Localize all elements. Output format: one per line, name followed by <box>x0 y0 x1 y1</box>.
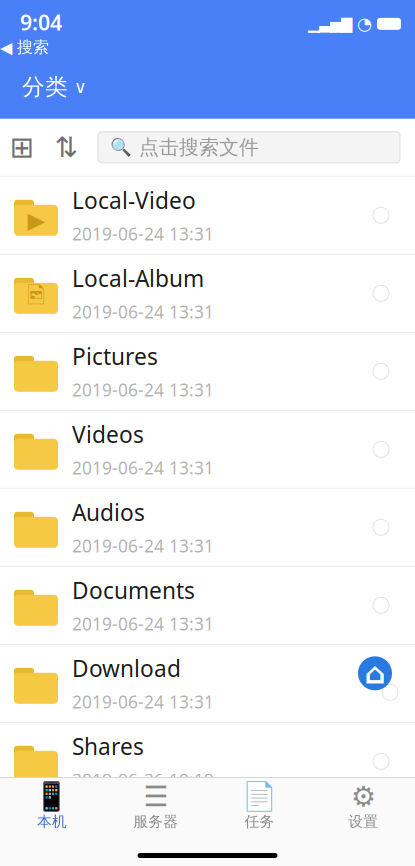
staticText: 设置 <box>348 812 378 830</box>
staticText: Local-Video <box>72 185 196 215</box>
staticText: 📄 <box>242 780 277 812</box>
staticText: 2019-06-24 13:31 <box>72 378 214 401</box>
button[interactable]: Audios <box>0 489 415 567</box>
staticText: ⊞ <box>9 131 34 164</box>
staticText: 2019-06-24 13:31 <box>72 222 214 245</box>
staticText: ▁▃▅▇ <box>308 15 352 32</box>
staticText: 服务器 <box>133 812 178 830</box>
staticText: ⌂ <box>364 657 385 690</box>
staticText: 🖻 <box>27 279 45 317</box>
button[interactable]: 🔍 <box>98 132 400 163</box>
button[interactable]: 📱 <box>0 777 104 830</box>
staticText: ◔ <box>357 14 372 34</box>
button[interactable]: Pictures <box>0 333 415 411</box>
staticText: 📱 <box>34 780 69 812</box>
button[interactable]: Videos <box>0 411 415 489</box>
staticText: ∨ <box>74 77 87 97</box>
staticText: 任务 <box>244 812 274 830</box>
button[interactable]: ☰ <box>104 777 208 830</box>
staticText: 2019-06-24 13:31 <box>72 534 214 557</box>
staticText: Audios <box>72 497 145 527</box>
staticText: ⚙ <box>351 781 376 812</box>
staticText: ▶ <box>27 207 44 233</box>
button[interactable]: New Folder <box>0 125 44 169</box>
button[interactable]: Shares <box>0 723 415 801</box>
staticText: 9:04 <box>20 8 62 36</box>
staticText: Videos <box>72 419 144 449</box>
button[interactable]: ▶ <box>0 177 415 255</box>
staticText: Shares <box>72 731 144 761</box>
button[interactable]: Sort <box>44 125 88 169</box>
staticText: Local-Album <box>72 263 204 293</box>
button[interactable]: Documents <box>0 567 415 645</box>
staticText: 2019-06-24 13:31 <box>72 690 214 713</box>
staticText: 2019-06-24 13:31 <box>72 612 214 635</box>
staticText: ⇅ <box>54 131 77 163</box>
staticText: Download <box>72 653 181 683</box>
button[interactable]: 📄 <box>207 777 311 830</box>
button[interactable]: ◀ 搜索 <box>0 37 49 57</box>
staticText: ☰ <box>143 781 168 812</box>
staticText: 本机 <box>37 812 67 830</box>
staticText: ◀ 搜索 <box>0 37 49 57</box>
button[interactable]: Download <box>0 645 415 723</box>
staticText: 2019-06-24 13:31 <box>72 456 214 479</box>
staticText: Pictures <box>72 341 158 371</box>
staticText: 🔍 <box>110 137 132 157</box>
staticText: 2019-06-24 13:31 <box>72 300 214 323</box>
staticText: 点击搜索文件 <box>139 135 259 160</box>
staticText: 分类 <box>22 73 68 101</box>
staticText: Documents <box>72 575 195 605</box>
button[interactable]: 分类 <box>0 67 87 107</box>
button[interactable]: ⚙ <box>311 777 415 830</box>
button[interactable]: 🖻 <box>0 255 415 333</box>
staticText: 2019-06-26 10:19 <box>72 768 214 791</box>
